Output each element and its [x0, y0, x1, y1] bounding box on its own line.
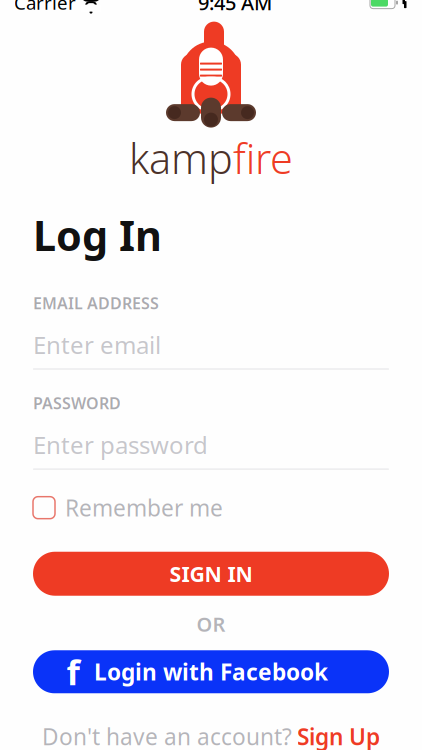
button[interactable]: Login with Facebook — [33, 650, 389, 693]
staticText: Sign Up — [297, 721, 380, 750]
staticText: Log In — [33, 207, 162, 262]
staticText: SIGN IN — [169, 560, 252, 588]
staticText: kamp — [129, 131, 233, 185]
button[interactable]: Don't have an account? — [33, 717, 389, 750]
staticText: EMAIL ADDRESS — [33, 292, 159, 314]
staticText: Enter email — [33, 329, 161, 360]
staticText: OR — [196, 611, 225, 637]
staticText: Don't have an account? — [42, 721, 292, 750]
staticText: fire — [233, 131, 293, 185]
staticText: Enter password — [33, 429, 208, 461]
staticText: Login with Facebook — [94, 657, 328, 687]
staticText: PASSWORD — [33, 392, 121, 414]
staticText: Carrier — [14, 0, 76, 15]
button[interactable]: SIGN IN — [33, 552, 389, 596]
staticText: Remember me — [65, 493, 223, 523]
staticText: 9:45 AM — [198, 0, 272, 16]
button[interactable]: Remember me — [33, 489, 223, 527]
staticText: f — [66, 649, 79, 695]
